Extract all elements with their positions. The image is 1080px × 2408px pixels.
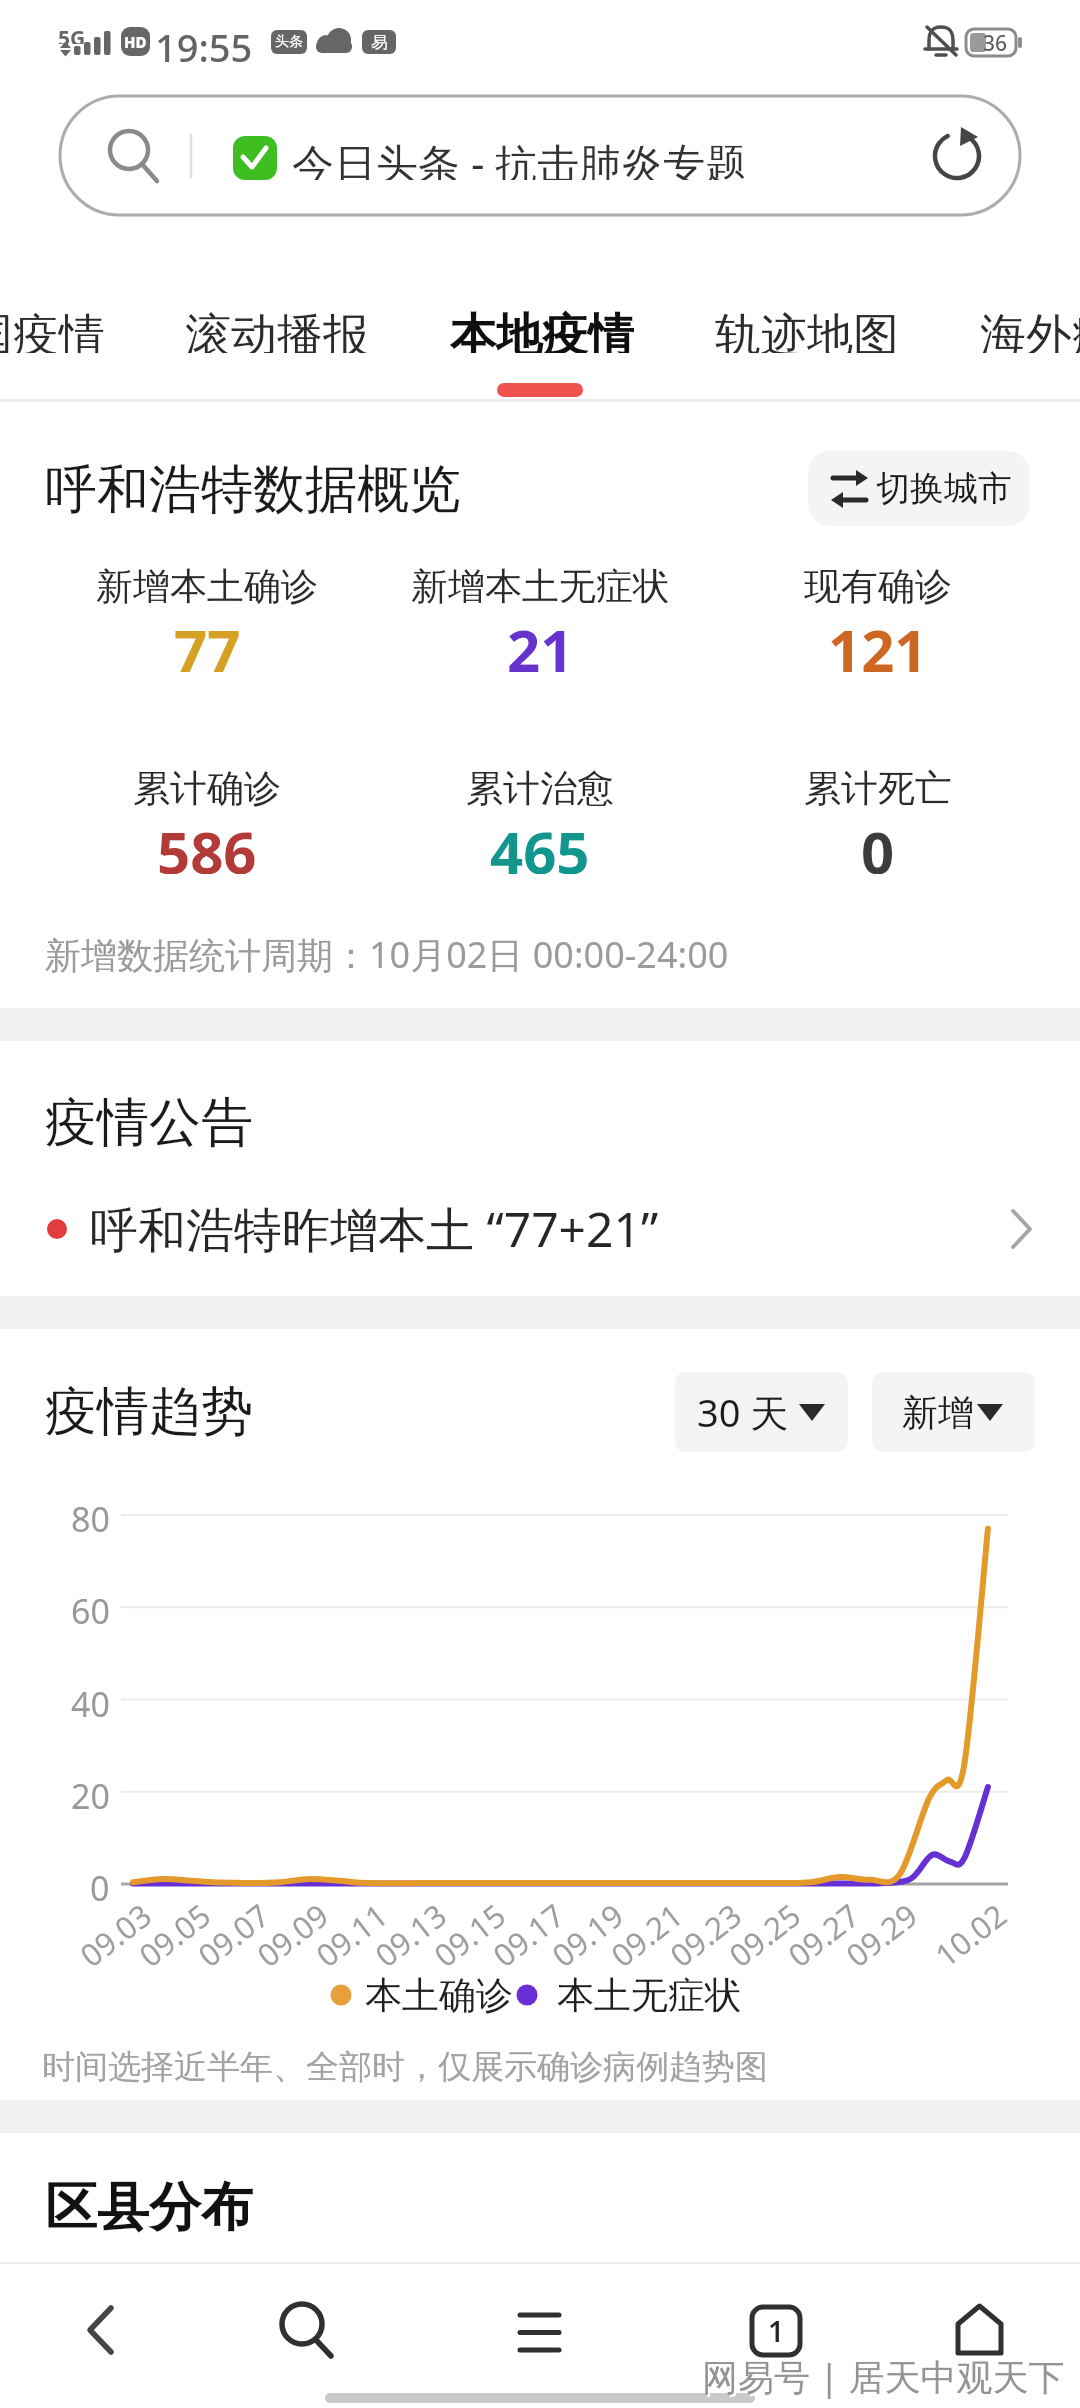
staticText: 时间选择近半年、全部时，仅展示确诊病例趋势图: [42, 2046, 768, 2088]
staticText: 09.03: [71, 1894, 159, 1974]
staticText: 网易号 | 居天中观天下: [704, 2354, 1067, 2403]
staticText: 头条: [275, 33, 303, 51]
staticText: 累计治愈: [466, 765, 614, 809]
button[interactable]: [675, 1372, 848, 1452]
button[interactable]: 轨迹地图: [715, 307, 899, 353]
staticText: 80: [71, 1496, 110, 1534]
staticText: 新增本土无症状: [411, 563, 670, 607]
staticText: 切换城市: [876, 467, 1012, 510]
staticText: 36: [983, 29, 1008, 56]
button[interactable]: [40, 2285, 170, 2385]
staticText: 21: [507, 610, 574, 672]
staticText: 现有确诊: [804, 563, 952, 607]
button[interactable]: [915, 2285, 1045, 2385]
button[interactable]: [60, 96, 1020, 215]
staticText: 586: [157, 812, 257, 874]
button[interactable]: 本地疫情: [450, 307, 634, 353]
button[interactable]: [475, 2285, 605, 2385]
staticText: 新增本土确诊: [96, 563, 318, 607]
staticText: 新增: [902, 1390, 974, 1435]
staticText: 121: [828, 610, 928, 672]
button[interactable]: 滚动播报: [185, 307, 369, 353]
button[interactable]: 国疫情: [0, 307, 105, 353]
staticText: 区县分布: [45, 2175, 253, 2241]
staticText: 0: [861, 812, 895, 874]
staticText: 09.19: [543, 1894, 631, 1974]
staticText: 本土无症状: [557, 1972, 742, 2019]
staticText: 09.09: [248, 1894, 336, 1974]
staticText: 77: [174, 610, 241, 672]
staticText: 09.27: [779, 1894, 867, 1974]
staticText: 09.15: [425, 1894, 513, 1974]
button[interactable]: [711, 2285, 841, 2385]
staticText: 1: [768, 2312, 785, 2350]
staticText: 累计确诊: [133, 765, 281, 809]
staticText: 09.07: [189, 1894, 277, 1974]
staticText: 呼和浩特昨增本土 “77+21”: [90, 1196, 659, 1262]
button[interactable]: [240, 2285, 370, 2385]
staticText: 疫情趋势: [45, 1379, 253, 1445]
staticText: 09.21: [602, 1894, 690, 1974]
staticText: 09.25: [720, 1894, 808, 1974]
button[interactable]: [0, 1180, 1080, 1280]
staticText: 累计死亡: [804, 765, 952, 809]
staticText: 国疫情: [0, 307, 105, 353]
staticText: 09.29: [837, 1894, 925, 1974]
staticText: 今日头条 - 抗击肺炎专题: [292, 134, 748, 180]
staticText: 09.17: [484, 1894, 572, 1974]
staticText: 疫情公告: [45, 1090, 253, 1156]
button[interactable]: [872, 1372, 1035, 1452]
staticText: 30 天: [697, 1386, 789, 1438]
staticText: 09.11: [307, 1894, 395, 1974]
staticText: 呼和浩特数据概览: [45, 457, 461, 523]
staticText: HD: [124, 32, 147, 52]
staticText: 0: [90, 1865, 110, 1903]
staticText: 海外疫情: [980, 307, 1080, 353]
staticText: 40: [71, 1681, 110, 1719]
staticText: 本土确诊: [365, 1972, 513, 2019]
staticText: 19:55: [155, 21, 253, 65]
staticText: 滚动播报: [185, 307, 369, 353]
staticText: 网易号 | 居天中观天下: [702, 2352, 1065, 2401]
staticText: 20: [71, 1773, 110, 1811]
staticText: 09.23: [661, 1894, 749, 1974]
staticText: 10.02: [926, 1894, 1014, 1974]
staticText: 5G: [58, 24, 86, 44]
staticText: 60: [71, 1588, 110, 1626]
staticText: 465: [490, 812, 590, 874]
staticText: 轨迹地图: [715, 307, 899, 353]
button[interactable]: 海外疫情: [980, 307, 1080, 353]
staticText: 新增数据统计周期：10月02日 00:00-24:00: [45, 930, 729, 976]
staticText: 本地疫情: [450, 307, 634, 353]
button[interactable]: [808, 451, 1030, 526]
staticText: 09.13: [366, 1894, 454, 1974]
staticText: 09.05: [130, 1894, 218, 1974]
staticText: 易: [371, 32, 388, 53]
